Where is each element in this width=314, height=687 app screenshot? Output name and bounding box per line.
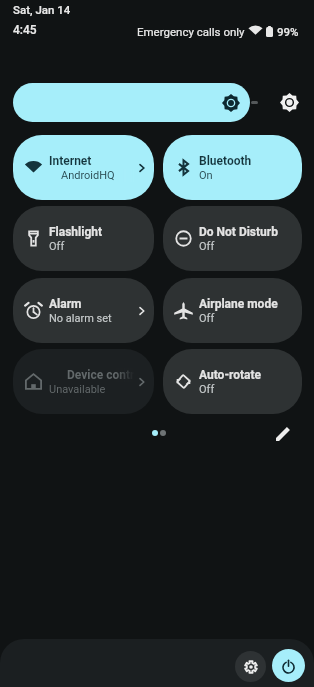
staticText: Unavailable <box>49 383 106 396</box>
button[interactable]: Power <box>272 649 305 682</box>
staticText: AndroidHQ <box>61 169 115 182</box>
staticText: Internet <box>49 154 92 168</box>
button[interactable]: Alarm <box>13 278 154 343</box>
staticText: Off <box>199 312 215 325</box>
button[interactable]: Airplane mode <box>163 278 302 343</box>
button[interactable]: Settings <box>235 651 266 682</box>
staticText: Auto-rotate <box>199 368 262 382</box>
staticText: Off <box>199 240 215 253</box>
staticText: Off <box>49 240 65 253</box>
staticText: 4:45 <box>13 23 37 37</box>
staticText: On <box>199 169 213 182</box>
button[interactable]: Device controls <box>13 349 154 414</box>
button[interactable]: Internet <box>13 135 154 200</box>
staticText: Emergency calls only <box>137 25 245 38</box>
staticText: Do Not Disturb <box>199 225 278 239</box>
staticText: Alarm <box>49 297 82 311</box>
button[interactable]: Flashlight <box>13 206 154 271</box>
button[interactable]: Brightness <box>13 83 250 122</box>
button[interactable]: Do Not Disturb <box>163 206 302 271</box>
staticText: Device controls <box>67 368 134 382</box>
button[interactable]: Auto brightness <box>277 90 301 114</box>
staticText: Bluetooth <box>199 154 252 168</box>
staticText: Flashlight <box>49 225 103 239</box>
staticText: Off <box>199 383 215 396</box>
button[interactable]: Bluetooth <box>163 135 302 200</box>
staticText: Airplane mode <box>199 297 278 311</box>
button[interactable]: Auto-rotate <box>163 349 302 414</box>
staticText: Sat, Jan 14 <box>13 3 71 16</box>
staticText: 99% <box>277 25 299 38</box>
button[interactable]: Edit tiles <box>271 421 295 445</box>
staticText: No alarm set <box>49 312 112 325</box>
